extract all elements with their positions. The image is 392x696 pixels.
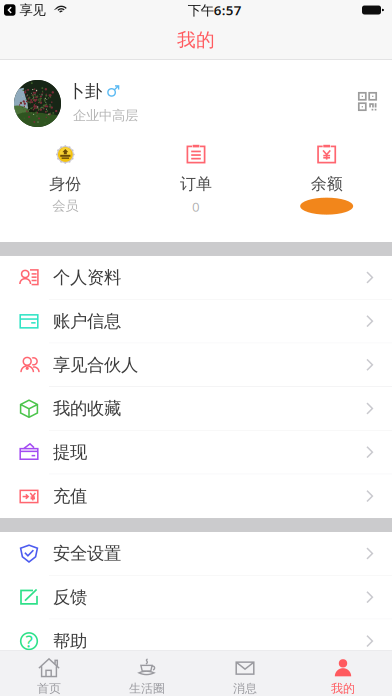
staticText: 享见 (19, 2, 45, 18)
staticText: 充值 (53, 485, 87, 507)
button[interactable]: 提现 (0, 431, 392, 474)
staticText: 订单 (180, 174, 212, 194)
button[interactable]: 余额 (261, 132, 392, 242)
staticText: 消息 (233, 681, 257, 696)
staticText: 首页 (37, 681, 61, 696)
staticText: ? (25, 630, 32, 652)
button[interactable]: 我的 (294, 650, 392, 696)
button[interactable]: 身份 (0, 132, 131, 242)
button[interactable]: ? (0, 619, 392, 663)
staticText: 身份 (49, 174, 81, 194)
staticText: 生活圈 (129, 681, 165, 696)
button[interactable]: 个人资料 (0, 256, 392, 300)
button[interactable]: 首页 (0, 650, 98, 696)
staticText: 0 (192, 198, 200, 215)
button[interactable]: 生活圈 (98, 650, 196, 696)
staticText: 个人资料 (53, 267, 121, 288)
staticText: 企业中高层 (73, 107, 138, 124)
button[interactable]: 订单 (131, 132, 261, 242)
staticText: 会员 (52, 198, 78, 214)
staticText: 帮助 (53, 630, 87, 652)
staticText: 账户信息 (53, 311, 121, 332)
button[interactable]: 安全设置 (0, 532, 392, 576)
staticText: 我的 (331, 681, 355, 696)
button[interactable]: 账户信息 (0, 300, 392, 343)
button[interactable]: My QR code (353, 87, 382, 116)
staticText: 卜卦 (68, 81, 102, 102)
staticText: 余额 (311, 174, 343, 194)
staticText: 提现 (53, 442, 87, 463)
staticText: 我的收藏 (53, 398, 121, 419)
staticText: 下午6:57 (188, 1, 242, 19)
staticText: 反馈 (53, 587, 87, 608)
button[interactable]: 充值 (0, 474, 392, 518)
staticText: 享见合伙人 (53, 354, 138, 376)
button[interactable]: 我的收藏 (0, 387, 392, 431)
staticText: 安全设置 (53, 543, 121, 564)
button[interactable]: 反馈 (0, 576, 392, 619)
button[interactable]: 消息 (196, 650, 294, 696)
staticText: 我的 (177, 28, 215, 51)
button[interactable]: 享见合伙人 (0, 343, 392, 387)
